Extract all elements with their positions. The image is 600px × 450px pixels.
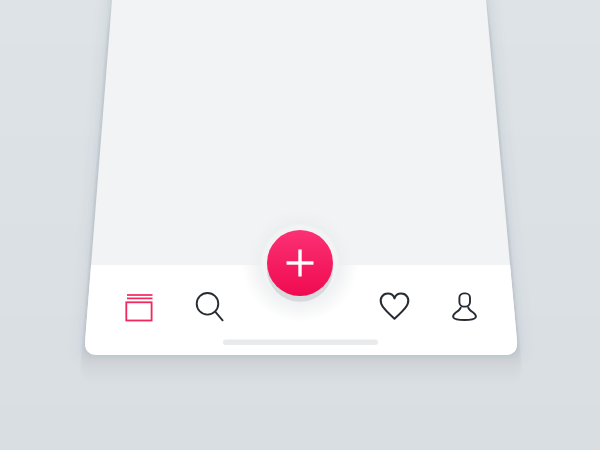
button[interactable]	[267, 230, 333, 296]
button[interactable]	[370, 282, 418, 330]
button[interactable]	[440, 282, 488, 330]
button[interactable]	[114, 283, 162, 331]
button[interactable]	[183, 282, 231, 330]
